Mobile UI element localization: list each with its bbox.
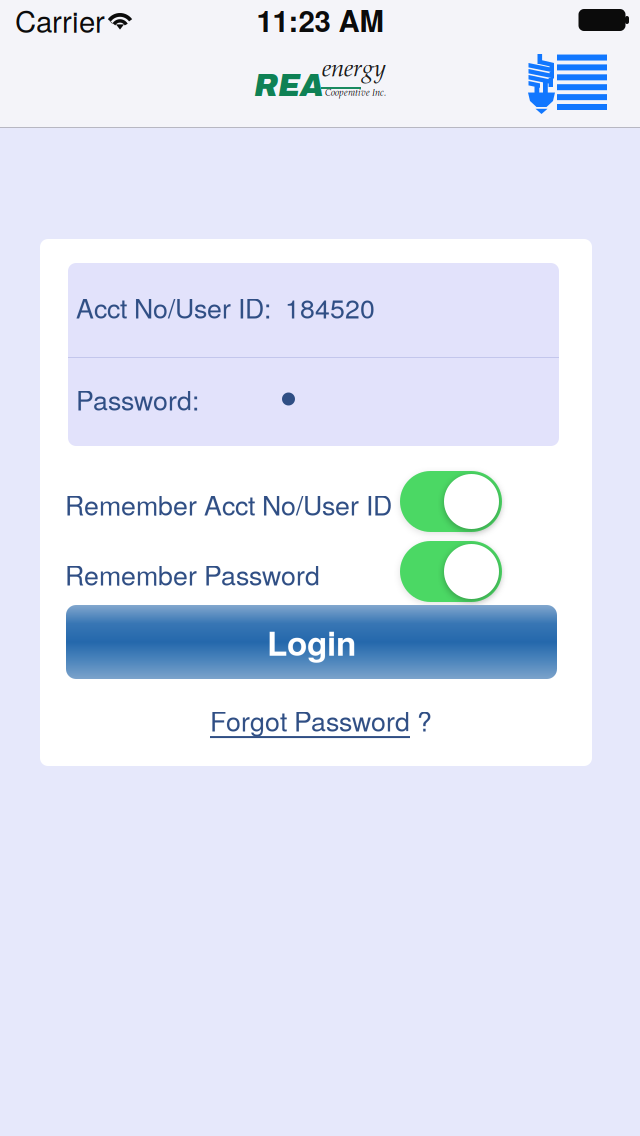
staticText: Carrier bbox=[15, 0, 105, 41]
staticText: Forgot Password bbox=[210, 701, 410, 739]
staticText: energy bbox=[322, 59, 386, 83]
staticText: Password: bbox=[76, 380, 199, 418]
staticText: Login bbox=[267, 618, 356, 666]
button[interactable]: Login bbox=[66, 605, 557, 679]
staticText: ? bbox=[410, 701, 432, 739]
staticText: Acct No/User ID: 184520 bbox=[76, 288, 375, 326]
button[interactable]: Forgot Password bbox=[198, 696, 444, 744]
button[interactable]: REA Energy bbox=[527, 54, 607, 114]
staticText: Remember Password bbox=[65, 555, 320, 593]
staticText: 11:23 AM bbox=[256, 0, 383, 41]
staticText: Remember Acct No/User ID bbox=[65, 485, 392, 523]
staticText: Cooperative Inc. bbox=[325, 89, 386, 98]
staticText: REA bbox=[254, 69, 324, 102]
button[interactable]: Remember Acct No/User ID bbox=[400, 471, 502, 532]
button[interactable]: Remember Password bbox=[400, 541, 502, 602]
